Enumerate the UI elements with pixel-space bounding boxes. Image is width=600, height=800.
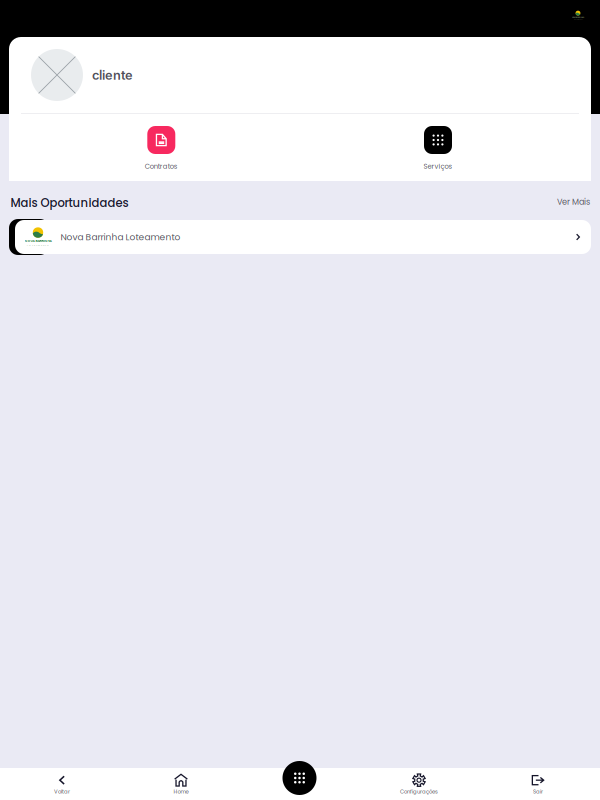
button[interactable]: Serviços <box>392 126 484 170</box>
button[interactable]: Configurações <box>360 767 478 799</box>
staticText: Mais Oportunidades <box>10 195 128 211</box>
button[interactable]: Sair <box>479 767 597 799</box>
staticText: Serviços <box>423 161 452 171</box>
staticText: Sair <box>533 788 543 795</box>
button[interactable]: Voltar <box>3 767 121 799</box>
button[interactable]: Home <box>122 767 240 799</box>
staticText: NOVA BARRINHA <box>572 16 584 18</box>
staticText: Configurações <box>400 788 438 795</box>
staticText: Ver Mais <box>557 196 590 208</box>
button[interactable]: Contratos <box>115 126 207 170</box>
staticText: Contratos <box>145 161 178 171</box>
staticText: Voltar <box>54 788 70 795</box>
button[interactable]: NOVA BARRINHA <box>15 220 591 254</box>
staticText: NOVA BARRINHA <box>24 238 51 243</box>
button[interactable]: Ver Mais <box>554 193 593 211</box>
staticText: L O T E A M E N T O <box>573 19 582 20</box>
staticText: Home <box>173 788 188 795</box>
staticText: Nova Barrinha Loteamento <box>60 231 180 243</box>
staticText: cliente <box>92 67 133 83</box>
staticText: L O T E A M E N T O <box>27 244 49 247</box>
button[interactable]: Aplicativos <box>282 761 316 795</box>
